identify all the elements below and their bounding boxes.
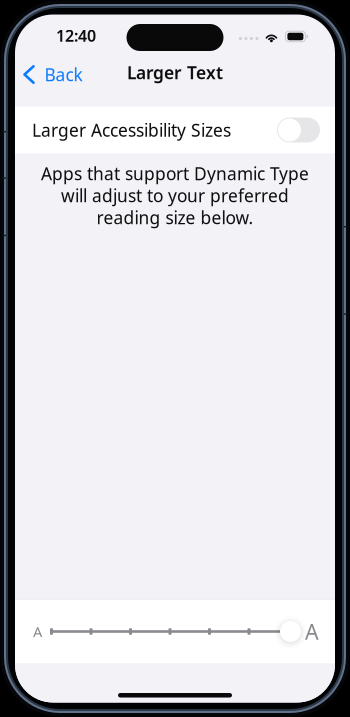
staticText: reading size below. — [96, 206, 253, 229]
staticText: Larger Accessibility Sizes — [32, 118, 231, 141]
button[interactable]: Text size — [15, 599, 335, 663]
button[interactable]: Larger Accessibility Sizes — [15, 106, 335, 153]
staticText: A — [33, 622, 42, 641]
staticText: will adjust to your preferred — [61, 184, 289, 207]
staticText: Back — [44, 63, 82, 86]
staticText: 12:40 — [56, 25, 96, 46]
staticText: A — [305, 617, 319, 646]
staticText: Apps that support Dynamic Type — [41, 162, 309, 185]
button[interactable]: Back — [15, 56, 82, 93]
staticText: Larger Text — [127, 61, 223, 84]
